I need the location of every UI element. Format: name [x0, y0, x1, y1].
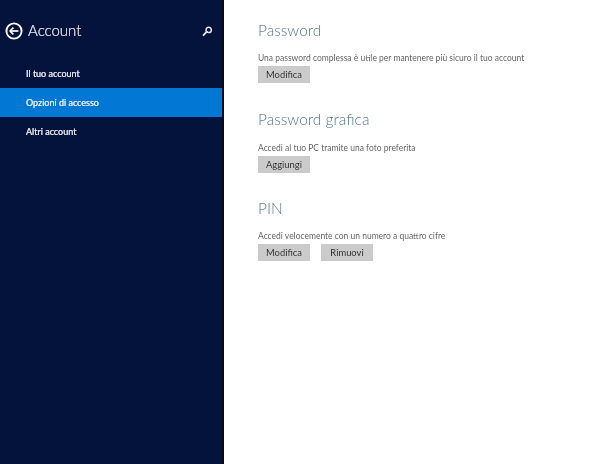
staticText: PIN — [258, 199, 283, 218]
button[interactable]: Opzioni di accesso — [0, 88, 222, 117]
button[interactable]: Altri account — [0, 117, 222, 146]
staticText: Altri account — [26, 126, 77, 137]
button[interactable]: Modifica — [258, 244, 310, 261]
staticText: Accedi al tuo PC tramite una foto prefer… — [258, 143, 416, 153]
button[interactable]: Modifica — [258, 66, 310, 83]
button[interactable]: Search — [194, 18, 219, 43]
staticText: Rimuovi — [330, 247, 364, 258]
button[interactable]: Aggiungi — [258, 156, 310, 173]
button[interactable]: Back — [1, 18, 27, 44]
staticText: Account — [28, 21, 82, 39]
staticText: Modifica — [266, 247, 302, 258]
staticText: Modifica — [266, 69, 302, 80]
button[interactable]: Il tuo account — [0, 59, 222, 88]
staticText: Opzioni di accesso — [26, 97, 99, 108]
staticText: Il tuo account — [26, 68, 80, 79]
staticText: Accedi velocemente con un numero a quatt… — [258, 231, 446, 241]
staticText: Una password complessa è utile per mante… — [258, 53, 525, 63]
staticText: Password — [258, 21, 322, 40]
staticText: Aggiungi — [266, 159, 302, 170]
staticText: Password grafica — [258, 110, 370, 129]
button[interactable]: Rimuovi — [321, 244, 373, 261]
